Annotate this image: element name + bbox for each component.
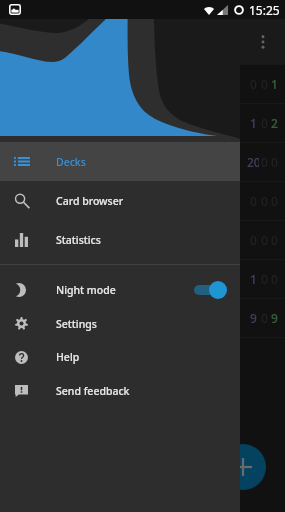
button[interactable]: More options xyxy=(246,25,280,59)
staticText: German xyxy=(14,153,64,171)
staticText: 2 xyxy=(271,115,278,131)
staticText: Night mode xyxy=(56,283,116,297)
button[interactable]: Add xyxy=(220,444,266,490)
staticText: 0 xyxy=(261,271,268,287)
button[interactable]: Night mode xyxy=(0,273,240,307)
staticText: Biology xyxy=(14,309,60,327)
staticText: Send feedback xyxy=(56,384,130,398)
button[interactable]: Settings xyxy=(0,307,240,340)
button[interactable]: Biology xyxy=(0,299,285,337)
button[interactable]: Statistics xyxy=(0,220,240,259)
staticText: 0 xyxy=(250,76,257,92)
button[interactable]: French xyxy=(0,104,285,142)
staticText: 0 xyxy=(261,232,268,248)
staticText: Statistics xyxy=(56,233,101,247)
button[interactable]: Help xyxy=(0,340,240,374)
staticText: 0 xyxy=(250,193,257,209)
staticText: 1 xyxy=(250,115,257,131)
button[interactable]: Spanish xyxy=(0,182,285,220)
staticText: 0 xyxy=(271,271,278,287)
staticText: Japanese xyxy=(14,231,70,249)
staticText: Chinese xyxy=(14,270,63,288)
button[interactable]: Decks xyxy=(0,142,240,181)
button[interactable]: Send feedback xyxy=(0,374,240,407)
staticText: 0 xyxy=(261,193,268,209)
staticText: 9 xyxy=(271,310,278,326)
staticText: 0 xyxy=(261,310,268,326)
button[interactable]: Card browser xyxy=(0,181,240,220)
staticText: 0 xyxy=(271,154,278,170)
staticText: Settings xyxy=(56,317,97,331)
staticText: 1 xyxy=(271,76,278,92)
staticText: Help xyxy=(56,350,80,364)
staticText: 0 xyxy=(261,76,268,92)
button[interactable]: Default xyxy=(0,65,285,103)
staticText: 9 xyxy=(250,310,257,326)
staticText: Spanish xyxy=(14,192,63,210)
staticText: 1 xyxy=(250,271,257,287)
staticText: Card browser xyxy=(56,194,124,208)
staticText: 20 xyxy=(247,154,259,170)
staticText: 0 xyxy=(261,154,268,170)
staticText: 0 xyxy=(271,193,278,209)
button[interactable]: German xyxy=(0,143,285,181)
staticText: Decks xyxy=(56,155,86,169)
staticText: 15:25 xyxy=(249,2,280,18)
staticText: 0 xyxy=(271,232,278,248)
staticText: 0 xyxy=(261,115,268,131)
staticText: 0 xyxy=(250,232,257,248)
button[interactable]: Chinese xyxy=(0,260,285,298)
button[interactable]: Japanese xyxy=(0,221,285,259)
